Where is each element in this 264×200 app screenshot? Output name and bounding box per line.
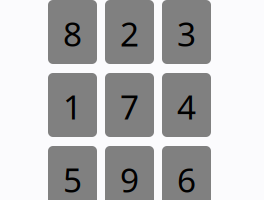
button[interactable]: 7 xyxy=(105,73,154,137)
button[interactable]: 4 xyxy=(162,73,211,137)
staticText: 2 xyxy=(120,11,139,56)
staticText: 5 xyxy=(63,157,82,200)
staticText: 6 xyxy=(177,157,196,200)
button[interactable]: 5 xyxy=(48,146,97,200)
button[interactable]: 2 xyxy=(105,0,154,64)
staticText: 9 xyxy=(120,157,139,200)
staticText: 7 xyxy=(120,84,139,129)
button[interactable]: 9 xyxy=(105,146,154,200)
button[interactable]: 8 xyxy=(48,0,97,64)
staticText: 1 xyxy=(63,84,82,129)
staticText: 4 xyxy=(177,84,196,129)
button[interactable]: 1 xyxy=(48,73,97,137)
staticText: 3 xyxy=(177,11,196,56)
button[interactable]: 6 xyxy=(162,146,211,200)
button[interactable]: 3 xyxy=(162,0,211,64)
staticText: 8 xyxy=(63,11,82,56)
